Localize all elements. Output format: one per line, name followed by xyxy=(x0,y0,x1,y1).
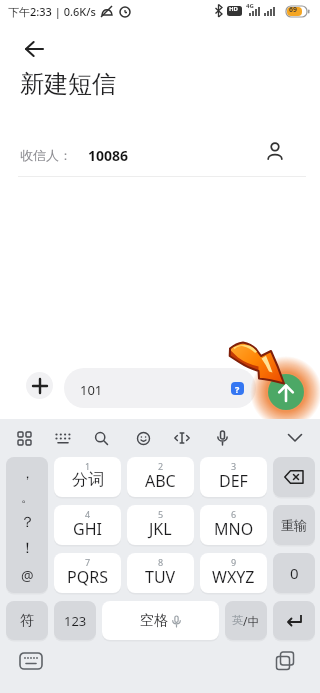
staticText: 符 xyxy=(20,612,34,630)
staticText: 69 xyxy=(289,5,298,15)
staticText: 4G xyxy=(246,2,254,10)
staticText: DEF xyxy=(219,470,248,492)
staticText: 分词 xyxy=(72,470,104,490)
staticText: ？ xyxy=(20,513,35,532)
staticText: 1 xyxy=(85,460,91,472)
staticText: 9 xyxy=(231,556,237,568)
staticText: 。 xyxy=(21,489,34,505)
button[interactable]: 8 xyxy=(127,553,194,593)
staticText: 4 xyxy=(85,508,91,520)
staticText: 2 xyxy=(158,460,164,472)
button[interactable]: 101 xyxy=(64,368,256,408)
staticText: GHI xyxy=(73,518,102,540)
button[interactable] xyxy=(87,424,115,452)
staticText: 7 xyxy=(85,556,91,568)
staticText: MNO xyxy=(214,518,254,540)
button[interactable] xyxy=(49,424,77,452)
button[interactable] xyxy=(16,31,52,67)
button[interactable]: ， xyxy=(6,457,48,593)
button[interactable] xyxy=(270,645,300,675)
button[interactable]: 符 xyxy=(6,601,48,640)
button[interactable]: 1 xyxy=(54,457,121,497)
staticText: HD xyxy=(229,5,238,13)
button[interactable] xyxy=(281,424,309,452)
staticText: ? xyxy=(235,383,240,395)
staticText: TUV xyxy=(145,566,176,588)
staticText: 0 xyxy=(290,563,299,583)
staticText: 10086 xyxy=(88,146,129,165)
button[interactable] xyxy=(268,374,304,410)
button[interactable] xyxy=(168,424,196,452)
button[interactable]: 123 xyxy=(54,601,96,640)
staticText: JKL xyxy=(149,518,172,540)
staticText: 101 xyxy=(80,381,103,399)
staticText: 下午2:33 | 0.6K/s xyxy=(8,4,96,19)
button[interactable]: 9 xyxy=(200,553,267,593)
staticText: 新建短信 xyxy=(20,69,116,99)
staticText: ！ xyxy=(20,539,35,558)
staticText: 空格 xyxy=(140,612,168,630)
button[interactable]: 5 xyxy=(127,505,194,545)
staticText: 123 xyxy=(64,612,87,630)
staticText: ABC xyxy=(145,470,176,492)
button[interactable] xyxy=(273,601,315,640)
button[interactable] xyxy=(26,372,53,399)
button[interactable]: 空格 xyxy=(102,601,219,640)
button[interactable]: 7 xyxy=(54,553,121,593)
staticText: 3 xyxy=(231,460,237,472)
button[interactable]: 3 xyxy=(200,457,267,497)
staticText: 5 xyxy=(158,508,164,520)
staticText: @ xyxy=(21,566,34,585)
staticText: ， xyxy=(21,465,34,481)
button[interactable]: 6 xyxy=(200,505,267,545)
button[interactable]: 英 xyxy=(225,601,267,640)
button[interactable]: 0 xyxy=(273,553,315,593)
button[interactable] xyxy=(129,424,157,452)
staticText: 收信人： xyxy=(20,147,72,163)
button[interactable] xyxy=(273,457,315,497)
button[interactable] xyxy=(258,134,292,168)
staticText: 英 xyxy=(232,613,243,627)
staticText: 8 xyxy=(158,556,164,568)
staticText: 重输 xyxy=(281,517,307,533)
button[interactable] xyxy=(10,424,38,452)
staticText: /中 xyxy=(243,613,260,629)
button[interactable]: 重输 xyxy=(273,505,315,545)
staticText: 6 xyxy=(231,508,237,520)
button[interactable]: 4 xyxy=(54,505,121,545)
button[interactable]: 2 xyxy=(127,457,194,497)
button[interactable] xyxy=(14,646,48,676)
staticText: WXYZ xyxy=(212,566,255,588)
staticText: PQRS xyxy=(67,566,108,588)
button[interactable] xyxy=(208,424,236,452)
